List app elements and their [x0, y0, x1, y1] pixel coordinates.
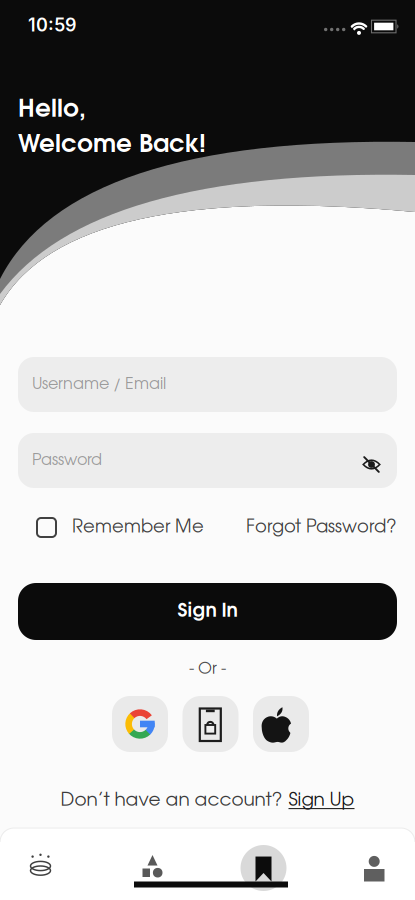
staticText: Don’t have an account? — [60, 792, 282, 809]
button[interactable]: Sign in with Google — [112, 696, 168, 752]
staticText: Hello, — [18, 98, 86, 121]
staticText: Sign Up — [288, 792, 354, 809]
button[interactable]: Sign in with Apple — [253, 696, 309, 752]
button[interactable]: Profile — [352, 844, 396, 888]
staticText: Password — [32, 453, 102, 468]
button[interactable]: Categories — [130, 844, 174, 888]
staticText: Forgot Password? — [246, 519, 397, 536]
button[interactable]: Forgot Password? — [246, 519, 397, 536]
button[interactable]: Show password — [360, 449, 382, 471]
staticText: - Or - — [189, 662, 226, 677]
staticText: Username / Email — [32, 377, 166, 392]
staticText: Sign In — [177, 603, 237, 620]
button[interactable]: Remember Me — [37, 518, 204, 537]
button[interactable]: Sign In — [18, 583, 397, 640]
button[interactable]: Sign Up — [288, 792, 354, 809]
staticText: Welcome Back! — [18, 134, 206, 157]
staticText: Remember Me — [72, 519, 204, 536]
button[interactable]: Saved — [240, 845, 286, 891]
button[interactable]: Sign in with phone — [182, 696, 238, 752]
button[interactable]: Menu — [18, 844, 62, 888]
staticText: 10:59 — [28, 14, 77, 36]
